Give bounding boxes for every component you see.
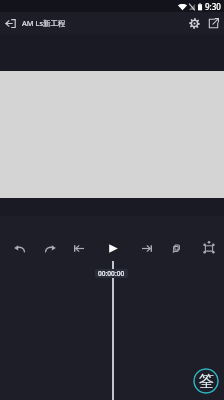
button[interactable]: Play [101, 235, 125, 259]
staticText: 筌 [199, 372, 214, 391]
staticText: AM Ls新工程 [22, 18, 66, 28]
button[interactable]: Settings [185, 12, 204, 34]
button[interactable]: Fit [197, 235, 221, 259]
button[interactable]: Back [0, 12, 22, 34]
staticText: 9:30 [205, 1, 221, 12]
button[interactable]: Watermark [193, 368, 219, 394]
button[interactable]: Export [204, 12, 223, 34]
button[interactable]: Undo [7, 235, 31, 259]
button[interactable]: 00:00:00 [95, 269, 128, 278]
button[interactable]: Skip to end [135, 235, 159, 259]
button[interactable]: Rotate [164, 235, 188, 259]
button[interactable]: Skip to start [67, 235, 91, 259]
button[interactable]: Redo [38, 235, 62, 259]
staticText: 00:00:00 [98, 269, 125, 278]
